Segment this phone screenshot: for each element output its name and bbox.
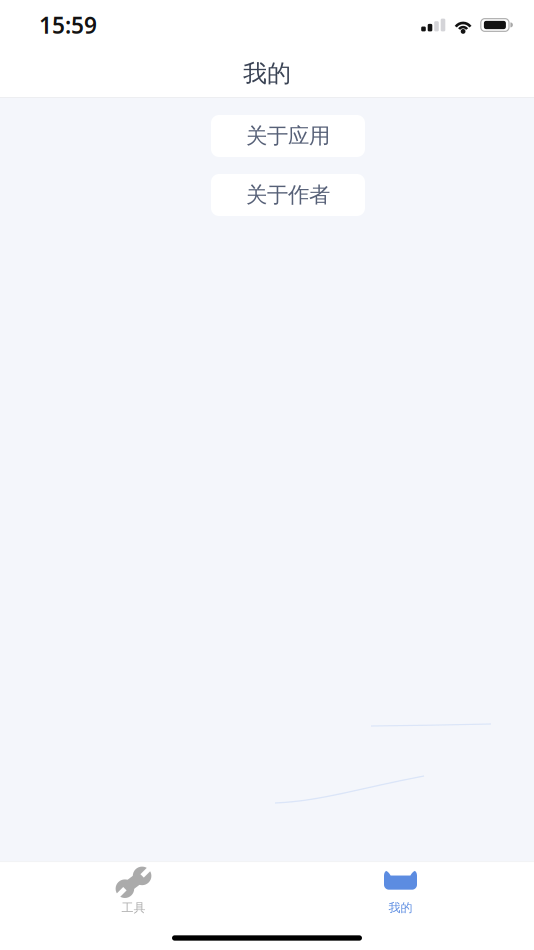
button[interactable]: 关于应用: [211, 115, 365, 157]
button[interactable]: 工具: [0, 862, 267, 935]
staticText: 15:59: [39, 10, 97, 40]
staticText: 关于作者: [246, 182, 330, 208]
button[interactable]: 我的: [267, 862, 534, 935]
staticText: 关于应用: [246, 123, 330, 149]
staticText: 我的: [243, 59, 291, 88]
staticText: 我的: [388, 900, 412, 915]
staticText: 工具: [121, 900, 145, 915]
button[interactable]: 关于作者: [211, 174, 365, 216]
